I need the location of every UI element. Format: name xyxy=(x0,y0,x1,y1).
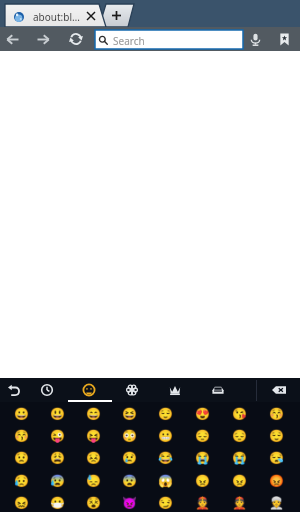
staticText: Search xyxy=(113,34,145,48)
staticText: 👿 xyxy=(122,496,137,510)
button[interactable]: 😂 xyxy=(147,447,184,469)
staticText: 😳 xyxy=(122,429,137,443)
button[interactable]: 😡 xyxy=(258,470,295,492)
staticText: 😷 xyxy=(50,496,65,510)
button[interactable]: 😌 xyxy=(147,403,184,425)
button[interactable]: about:bl… xyxy=(5,4,106,27)
button[interactable]: 😍 xyxy=(184,403,221,425)
button[interactable]: 👲 xyxy=(184,492,221,512)
staticText: 😂 xyxy=(158,451,173,465)
button[interactable]: Close tab xyxy=(83,8,99,24)
staticText: 😵 xyxy=(86,496,101,510)
button[interactable]: 😭 xyxy=(221,447,258,469)
staticText: 😔 xyxy=(195,429,210,443)
button[interactable]: Travel xyxy=(207,379,229,401)
button[interactable]: 😢 xyxy=(111,447,147,469)
button[interactable]: 😰 xyxy=(39,470,75,492)
staticText: 😣 xyxy=(86,451,101,465)
staticText: 😆 xyxy=(122,407,137,421)
button[interactable]: 😩 xyxy=(39,447,75,469)
staticText: 😓 xyxy=(86,474,101,488)
button[interactable]: 😥 xyxy=(3,470,39,492)
button[interactable]: 😖 xyxy=(3,492,39,512)
button[interactable]: Voice search xyxy=(245,29,266,50)
button[interactable]: 😱 xyxy=(147,470,184,492)
button[interactable]: 😷 xyxy=(39,492,75,512)
button[interactable]: 😀 xyxy=(3,403,39,425)
staticText: 😍 xyxy=(195,407,210,421)
staticText: 😱 xyxy=(158,474,173,488)
staticText: 😟 xyxy=(14,451,29,465)
staticText: 😥 xyxy=(14,474,29,488)
staticText: 😭 xyxy=(232,451,247,465)
staticText: 😚 xyxy=(269,407,284,421)
button[interactable]: 😃 xyxy=(39,403,75,425)
button[interactable]: 😏 xyxy=(147,492,184,512)
staticText: 👳 xyxy=(269,496,284,510)
button[interactable]: 😨 xyxy=(111,470,147,492)
button[interactable]: Reload xyxy=(65,28,87,50)
staticText: about:bl… xyxy=(33,10,80,24)
button[interactable]: 😬 xyxy=(147,425,184,447)
staticText: 😡 xyxy=(269,474,284,488)
button[interactable]: 😳 xyxy=(111,425,147,447)
button[interactable]: Smileys xyxy=(78,379,100,401)
button[interactable]: 😟 xyxy=(3,447,39,469)
button[interactable]: 😌 xyxy=(258,425,295,447)
button[interactable]: 😚 xyxy=(258,403,295,425)
staticText: 😌 xyxy=(269,429,284,443)
staticText: 😭 xyxy=(195,451,210,465)
button[interactable]: 😣 xyxy=(75,447,111,469)
button[interactable]: Forward xyxy=(33,29,54,50)
staticText: 😄 xyxy=(86,407,101,421)
staticText: 😜 xyxy=(50,429,65,443)
staticText: 😠 xyxy=(195,474,210,488)
staticText: 😢 xyxy=(122,451,137,465)
button[interactable]: 😔 xyxy=(221,425,258,447)
staticText: 😏 xyxy=(158,496,173,510)
button[interactable]: 😜 xyxy=(39,425,75,447)
button[interactable]: 😚 xyxy=(3,425,39,447)
staticText: 😌 xyxy=(158,407,173,421)
button[interactable]: 😄 xyxy=(75,403,111,425)
button[interactable]: Nature xyxy=(121,379,143,401)
button[interactable]: 😝 xyxy=(75,425,111,447)
button[interactable]: New tab xyxy=(99,4,135,27)
staticText: 😩 xyxy=(50,451,65,465)
button[interactable]: 😘 xyxy=(221,403,258,425)
staticText: 😬 xyxy=(158,429,173,443)
staticText: 😖 xyxy=(14,496,29,510)
button[interactable]: 😠 xyxy=(184,470,221,492)
button[interactable]: 😆 xyxy=(111,403,147,425)
staticText: 😔 xyxy=(232,429,247,443)
button[interactable]: 😓 xyxy=(75,470,111,492)
button[interactable]: Bookmarks xyxy=(274,29,295,50)
staticText: 👲 xyxy=(195,496,210,510)
staticText: 😚 xyxy=(14,429,29,443)
button[interactable]: 👳 xyxy=(258,492,295,512)
button[interactable]: Search xyxy=(95,30,243,49)
button[interactable]: 😵 xyxy=(75,492,111,512)
button[interactable]: 👿 xyxy=(111,492,147,512)
button[interactable]: 👲 xyxy=(221,492,258,512)
button[interactable]: 😠 xyxy=(221,470,258,492)
staticText: 😘 xyxy=(232,407,247,421)
button[interactable]: Back xyxy=(2,29,23,50)
staticText: 😰 xyxy=(50,474,65,488)
staticText: 😪 xyxy=(269,451,284,465)
button[interactable]: Objects xyxy=(164,379,186,401)
staticText: 😀 xyxy=(14,407,29,421)
button[interactable]: Recent xyxy=(36,379,58,401)
button[interactable]: Undo xyxy=(3,379,25,401)
staticText: 😠 xyxy=(232,474,247,488)
button[interactable]: 😪 xyxy=(258,447,295,469)
button[interactable]: 😔 xyxy=(184,425,221,447)
button[interactable]: 😭 xyxy=(184,447,221,469)
button[interactable]: Backspace xyxy=(268,379,290,401)
staticText: 😃 xyxy=(50,407,65,421)
staticText: 👲 xyxy=(232,496,247,510)
staticText: 😝 xyxy=(86,429,101,443)
staticText: 😨 xyxy=(122,474,137,488)
